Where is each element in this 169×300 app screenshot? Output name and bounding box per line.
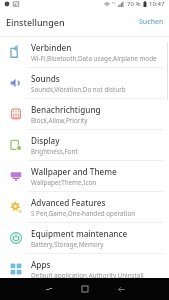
staticText: S Pen,Game,One-handed operation (31, 209, 136, 218)
button[interactable]: Suchen (137, 14, 166, 30)
staticText: Brightness,Font (31, 147, 78, 156)
button[interactable]: Benachrichtigung (0, 99, 169, 130)
staticText: Advanced Features (31, 197, 106, 208)
staticText: Benachrichtigung (31, 104, 101, 115)
staticText: Einstellungen (6, 16, 65, 28)
staticText: Equipment maintenance (31, 228, 128, 239)
button[interactable]: Home (67, 278, 103, 300)
staticText: Display (31, 135, 60, 146)
button[interactable]: Apps (0, 254, 169, 285)
button[interactable]: Back (103, 278, 139, 300)
staticText: Default application,Authority,Uninstall (31, 271, 144, 280)
staticText: Battery,Storage,Memory (31, 240, 104, 249)
staticText: Apps (31, 259, 51, 270)
staticText: Wallpaper,Theme,Icon (31, 178, 97, 187)
staticText: Wallpaper and Theme (31, 166, 117, 177)
staticText: Sounds (31, 73, 60, 84)
button[interactable]: Recent apps (31, 278, 67, 300)
staticText: Suchen (139, 17, 164, 27)
staticText: Sounds,Vibration,Do not disturb (31, 85, 126, 94)
button[interactable]: Wallpaper and Theme (0, 161, 169, 192)
button[interactable]: Verbinden (0, 37, 169, 68)
staticText: Block,Allow,Priority (31, 116, 88, 125)
button[interactable]: Equipment maintenance (0, 223, 169, 254)
staticText: Wi-Fi,Bluetooth,Data usage,Airplane mode (31, 54, 157, 63)
staticText: 10:47 (149, 0, 165, 8)
button[interactable]: Display (0, 130, 169, 161)
button[interactable]: Sounds (0, 68, 169, 99)
button[interactable]: Advanced Features (0, 192, 169, 223)
staticText: Verbinden (31, 42, 72, 53)
staticText: 70 % (127, 0, 141, 8)
